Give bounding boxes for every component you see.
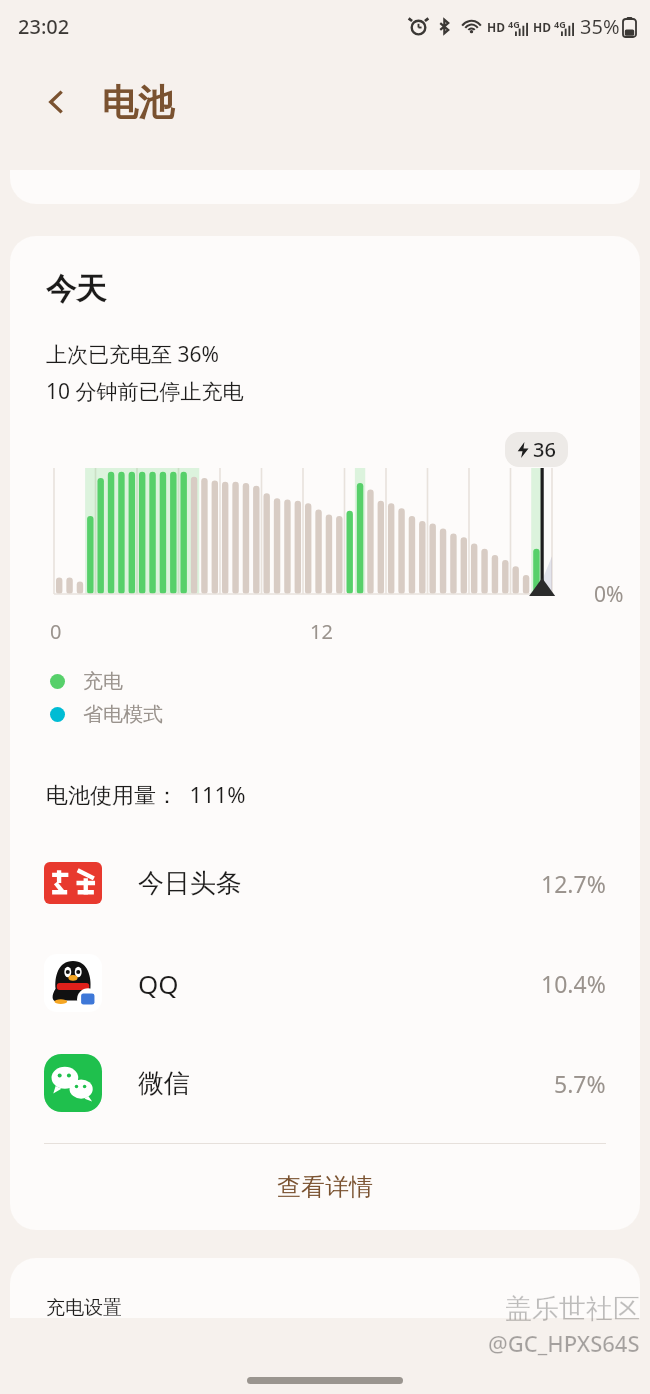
staticText: 盖乐世社区 (505, 1292, 640, 1326)
staticText: 10.4% (541, 968, 606, 999)
staticText: HD (533, 19, 551, 35)
button[interactable]: Back (34, 79, 80, 125)
staticText: 查看详情 (277, 1172, 373, 1202)
staticText: 电池 (102, 80, 174, 125)
staticText: 23:02 (18, 13, 70, 40)
button[interactable]: 今日头条 (10, 833, 640, 933)
staticText: 12 (310, 618, 333, 645)
staticText: 36 (533, 436, 556, 463)
staticText: 今天 (46, 270, 106, 308)
staticText: 上次已充电至 36% (46, 340, 219, 369)
staticText: 4G (508, 18, 520, 30)
staticText: 省电模式 (83, 702, 163, 727)
staticText: 充电设置 (46, 1296, 122, 1318)
staticText: 0% (594, 580, 624, 609)
staticText: 电池使用量： 111% (46, 779, 246, 809)
staticText: 5.7% (554, 1068, 606, 1099)
button[interactable]: 微信 (10, 1033, 640, 1133)
button[interactable]: 充电设置 (10, 1258, 640, 1318)
staticText: 12.7% (541, 868, 606, 899)
staticText: 10 分钟前已停止充电 (46, 377, 244, 406)
staticText: 35% (580, 13, 620, 40)
staticText: 今日头条 (138, 867, 242, 900)
staticText: 微信 (138, 1067, 190, 1100)
staticText: 充电 (83, 669, 123, 694)
staticText: 0 (50, 618, 62, 645)
staticText: HD (487, 19, 505, 35)
staticText: QQ (138, 966, 179, 1001)
button[interactable]: QQ (10, 933, 640, 1033)
staticText: 4G (554, 18, 566, 30)
button[interactable]: 查看详情 (10, 1144, 640, 1230)
staticText: @GC_HPXS64S (488, 1328, 640, 1358)
